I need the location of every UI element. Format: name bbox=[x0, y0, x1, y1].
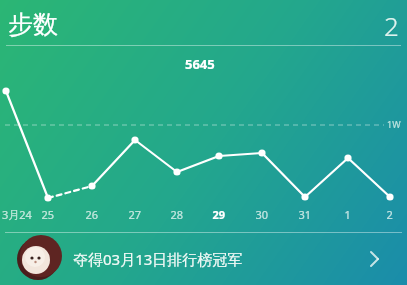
button[interactable]: 查看排行榜 bbox=[367, 245, 407, 285]
button[interactable] bbox=[0, 233, 407, 285]
button[interactable] bbox=[0, 0, 407, 285]
